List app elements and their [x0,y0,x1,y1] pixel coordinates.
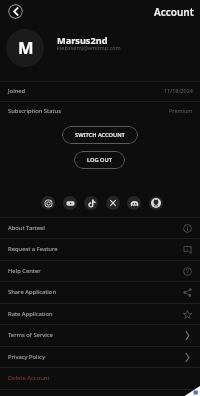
staticText: SWITCH ACCOUNT [75,131,125,139]
button[interactable]: LOG OUT [74,151,125,169]
staticText: M [18,36,34,58]
button[interactable]: Instagram [41,196,55,210]
button[interactable]: Discord [127,196,141,210]
button[interactable]: Terms of Service [0,324,200,346]
staticText: LOG OUT [87,156,112,164]
button[interactable]: Help Center [0,260,200,282]
staticText: Subscription Status [8,107,61,115]
button[interactable]: YouTube [63,196,77,210]
staticText: Joined [8,87,26,95]
button[interactable]: About Tarteel [0,217,200,239]
staticText: Request a Feature [8,245,58,253]
staticText: Share Application [8,288,56,296]
staticText: Rate Application [8,310,53,318]
staticText: Account [154,5,194,19]
staticText: Delete Account [8,374,50,382]
staticText: 11/18/2024 [164,87,193,94]
staticText: Premium [169,107,193,114]
button[interactable]: SWITCH ACCOUNT [62,126,138,144]
button[interactable]: Share Application [0,281,200,303]
button[interactable]: Delete Account [0,367,200,389]
button[interactable]: Request a Feature [0,238,200,260]
staticText: Privacy Policy [8,353,45,361]
staticText: Help Center [8,267,41,275]
staticText: Terms of Service [8,331,53,339]
button[interactable]: GitHub [149,196,163,210]
staticText: kiepxsemj@emitmp.com [57,44,121,51]
button[interactable]: Privacy Policy [0,346,200,368]
staticText: Marsus2nd [57,34,108,47]
staticText: About Tarteel [8,224,45,232]
button[interactable]: X [106,196,120,210]
button[interactable]: Rate Application [0,303,200,325]
button[interactable]: Back [8,4,23,19]
button[interactable]: TikTok [84,196,98,210]
